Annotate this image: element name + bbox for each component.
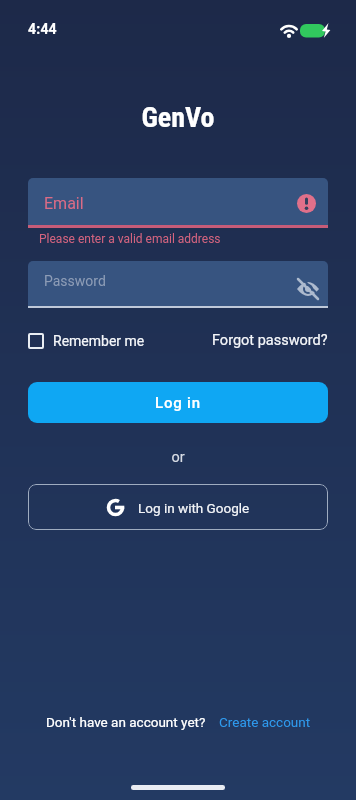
staticText: Email: [44, 194, 84, 213]
staticText: Remember me: [53, 333, 145, 349]
staticText: or: [0, 449, 356, 466]
staticText: Password: [44, 273, 106, 289]
button[interactable]: Log in: [28, 382, 328, 423]
staticText: Log in with Google: [138, 500, 250, 516]
staticText: Create account: [219, 714, 311, 730]
button[interactable]: Log in with Google: [28, 484, 328, 530]
button[interactable]: Create account: [219, 714, 311, 730]
button[interactable]: Remember me: [28, 333, 145, 349]
staticText: Log in: [155, 394, 201, 412]
staticText: Please enter a valid email address: [39, 232, 221, 246]
staticText: Forgot password?: [212, 332, 328, 349]
button[interactable]: Password: [28, 261, 328, 308]
button[interactable]: Email: [28, 178, 328, 228]
button[interactable]: Forgot password?: [212, 332, 328, 349]
staticText: GenVo: [0, 101, 356, 134]
staticText: 4:44: [28, 21, 57, 37]
button[interactable]: [296, 277, 320, 301]
staticText: Don't have an account yet?: [46, 714, 206, 730]
